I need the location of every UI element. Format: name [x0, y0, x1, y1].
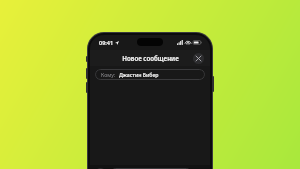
button[interactable]: Add attachment: [95, 168, 106, 169]
staticText: 09:41: [99, 39, 114, 46]
staticText: Кому:: [101, 71, 116, 78]
button[interactable]: Привет, слышь: [110, 168, 192, 169]
button[interactable]: Close: [193, 53, 204, 64]
button[interactable]: Кому:: [95, 69, 205, 80]
staticText: Джастин Бибер: [119, 71, 159, 78]
staticText: Новое сообщение: [122, 54, 179, 62]
